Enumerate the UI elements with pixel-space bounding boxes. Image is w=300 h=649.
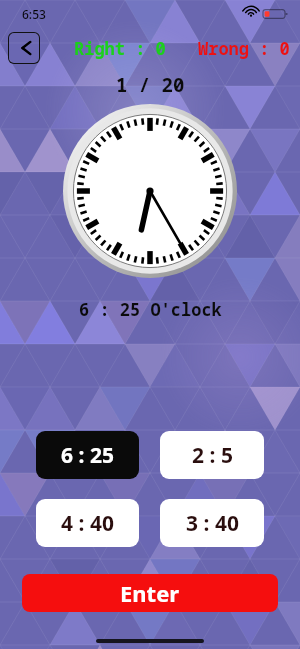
- staticText: 6 : 25 O'clock: [79, 298, 222, 321]
- staticText: 6 : 25: [61, 441, 114, 470]
- staticText: Right : 0: [74, 37, 166, 60]
- button[interactable]: 4 : 40: [36, 499, 139, 547]
- staticText: 1 / 20: [116, 72, 185, 98]
- staticText: Wrong : 0: [198, 37, 290, 60]
- button[interactable]: Enter: [22, 574, 278, 612]
- button[interactable]: 2 : 5: [160, 431, 264, 479]
- staticText: Enter: [120, 578, 180, 608]
- staticText: 2 : 5: [192, 441, 233, 470]
- button[interactable]: 3 : 40: [160, 499, 264, 547]
- staticText: 6:53: [22, 6, 46, 22]
- button[interactable]: Back: [8, 32, 40, 64]
- staticText: 3 : 40: [186, 509, 239, 538]
- staticText: 4 : 40: [61, 509, 114, 538]
- button[interactable]: 6 : 25: [36, 431, 139, 479]
